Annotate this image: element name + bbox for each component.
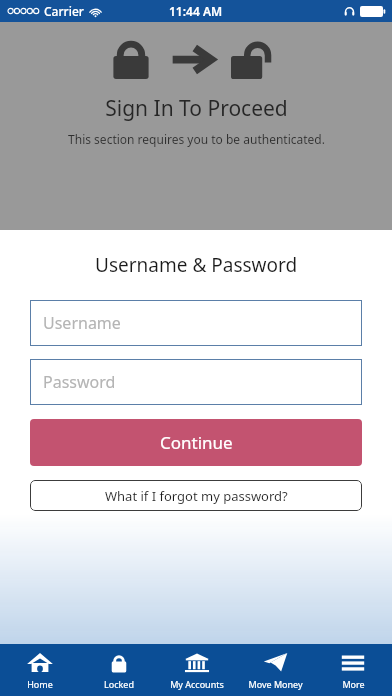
staticText: Move Money — [248, 678, 303, 690]
button[interactable]: What if I forgot my password? — [30, 480, 362, 511]
staticText: Continue — [160, 431, 233, 454]
staticText: This section requires you to be authenti… — [68, 131, 325, 147]
staticText: Password — [43, 371, 116, 393]
button[interactable]: Username — [30, 300, 362, 346]
button[interactable]: More — [314, 644, 392, 696]
staticText: Sign In To Proceed — [105, 94, 288, 123]
staticText: Carrier — [44, 3, 84, 19]
button[interactable]: Move Money — [236, 644, 314, 696]
staticText: My Accounts — [170, 678, 224, 690]
staticText: Home — [27, 678, 53, 690]
staticText: What if I forgot my password? — [105, 487, 288, 505]
staticText: Username & Password — [95, 252, 298, 278]
button[interactable]: My Accounts — [158, 644, 236, 696]
button[interactable]: Locked — [79, 644, 158, 696]
staticText: Username — [43, 312, 121, 334]
button[interactable]: Password — [30, 359, 362, 405]
staticText: More — [342, 678, 365, 690]
staticText: 11:44 AM — [169, 3, 223, 19]
button[interactable]: Continue — [30, 419, 362, 466]
button[interactable]: Home — [0, 644, 79, 696]
staticText: Locked — [104, 678, 134, 690]
